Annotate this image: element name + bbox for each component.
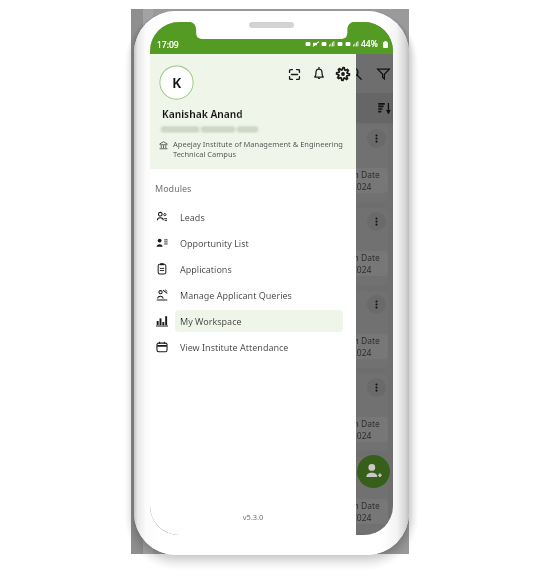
button[interactable]: My Workspace [150,308,356,334]
staticText: K [172,73,182,92]
staticText: Modules [155,182,192,194]
staticText: 18 Oct 2024 [324,264,372,276]
staticText: Application Date [314,500,380,512]
button[interactable]: Add lead [357,455,390,488]
staticText: Application Date [314,335,380,347]
button[interactable]: Application Date [155,374,388,451]
staticText: Apeejay Institute of Management & Engine… [173,139,350,159]
button[interactable]: Application Date [155,125,388,202]
staticText: Application Date [314,169,380,181]
button[interactable]: View Institute Attendance [150,334,356,360]
staticText: Application Date [314,252,380,264]
staticText: 18 Oct 2024 [324,430,372,442]
button[interactable]: Application Date [155,457,388,533]
button[interactable]: Sort [378,102,391,115]
button[interactable]: Filter [377,67,390,80]
button[interactable]: Application Date [155,291,388,368]
staticText: 18 Oct 2024 [324,512,372,524]
button[interactable]: Manage Applicant Queries [150,282,356,308]
staticText: 17:09 [157,39,179,51]
staticText: Kanishak Anand [162,107,243,121]
button[interactable]: Applications [150,256,356,282]
staticText: 44% [361,38,378,50]
button[interactable]: Notifications [312,67,326,81]
staticText: Leads [180,211,205,223]
staticText: 18 Oct 2024 [324,347,372,359]
button[interactable]: Leads [150,204,356,230]
staticText: My Workspace [180,315,242,327]
staticText: Application Date [314,418,380,430]
staticText: Applications [180,263,232,275]
staticText: 18 Oct 2024 [324,181,372,193]
button[interactable]: Scan QR code [288,68,301,81]
staticText: Opportunity List [180,237,249,249]
button[interactable]: Settings [336,67,350,81]
button[interactable]: Application Date [155,208,388,285]
staticText: View Institute Attendance [180,341,289,353]
button[interactable]: Opportunity List [150,230,356,256]
button[interactable]: Search [349,67,362,80]
staticText: Manage Applicant Queries [180,289,292,301]
staticText: v5.3.0 [150,512,356,522]
